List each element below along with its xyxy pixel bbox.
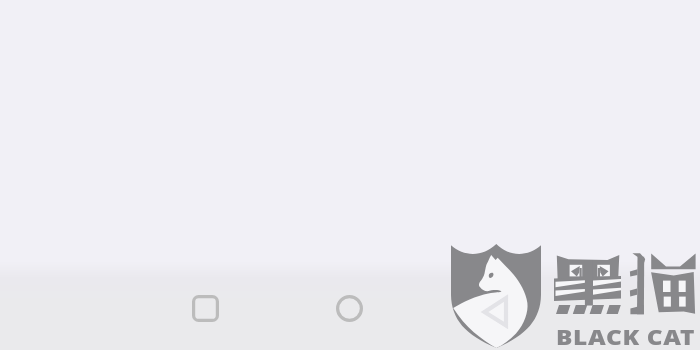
button[interactable]: Recents: [192, 295, 219, 322]
staticText: BLACK CAT: [556, 323, 695, 350]
button[interactable]: Black Cat logo: [440, 238, 700, 350]
button[interactable]: Home: [336, 295, 363, 322]
